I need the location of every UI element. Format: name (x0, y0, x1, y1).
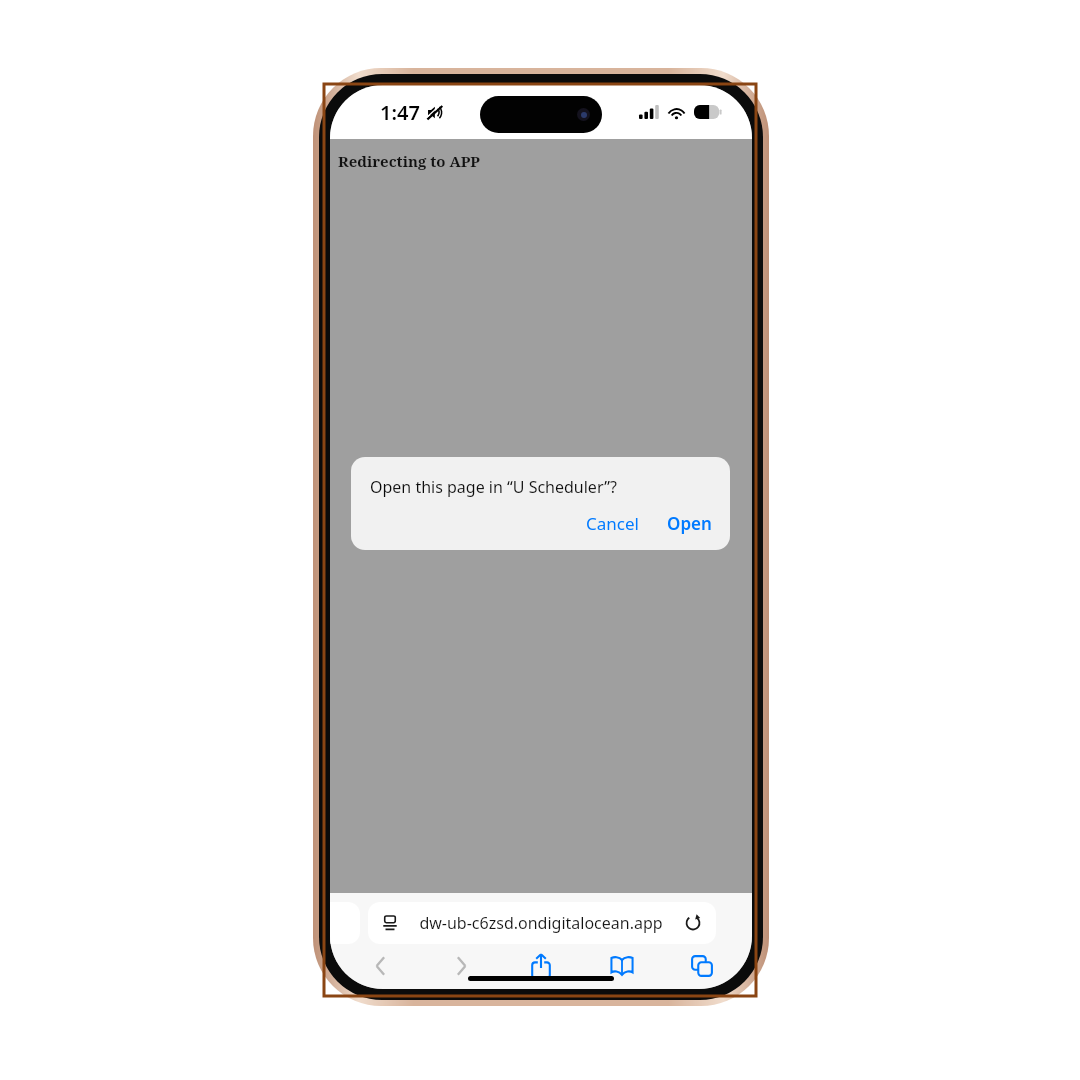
staticText: Open (667, 512, 712, 535)
button[interactable]: Tabs (674, 949, 730, 983)
staticText: Redirecting to APP (338, 151, 480, 171)
button[interactable]: Open (657, 508, 730, 539)
staticText: Cancel (586, 512, 639, 535)
staticText: 1:47 (380, 99, 420, 126)
button[interactable]: Share (513, 949, 569, 983)
staticText: dw-ub-c6zsd.ondigitalocean.app (398, 912, 684, 934)
button[interactable]: Cancel (576, 508, 649, 539)
button[interactable]: dw-ub-c6zsd.ondigitalocean.app (368, 902, 716, 944)
button[interactable]: Back (352, 949, 408, 983)
button[interactable]: Forward (433, 949, 489, 983)
staticText: Open this page in “U Scheduler”? (370, 476, 617, 498)
button[interactable]: Bookmarks (594, 949, 650, 983)
